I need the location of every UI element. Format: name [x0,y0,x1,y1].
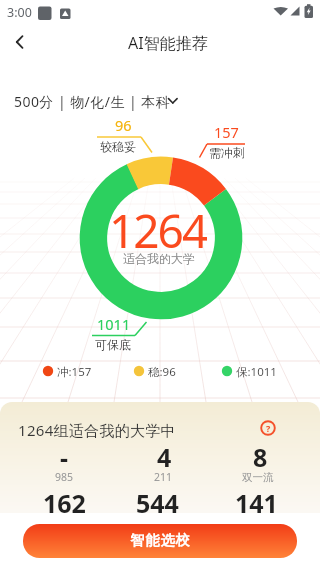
staticText: 500分 | 物/化/生 | 本科 [14,92,171,111]
staticText: - [60,440,69,474]
staticText: 3:00 [7,4,32,21]
button[interactable]: 智能选校 [23,524,297,558]
button[interactable] [219,360,295,382]
staticText: 544 [136,486,179,520]
staticText: 智能选校 [130,532,190,550]
button[interactable] [40,360,110,382]
staticText: 985 [55,470,74,484]
staticText: 162 [43,486,86,520]
button[interactable] [4,30,40,54]
staticText: 适合我的大学 [123,251,195,266]
staticText: 较稳妥 [100,139,136,154]
staticText: 1264 [109,199,207,249]
staticText: 需冲刺 [209,145,245,160]
button[interactable]: ? [256,416,280,440]
staticText: 96 [115,115,132,135]
staticText: 保:1011 [236,364,277,380]
staticText: 稳:96 [148,364,176,380]
staticText: 1011 [97,314,131,334]
staticText: 双一流 [242,471,274,484]
staticText: 8 [253,440,268,474]
staticText: 211 [154,470,173,484]
button[interactable] [131,360,197,382]
staticText: ? [266,422,271,434]
staticText: 141 [235,486,278,520]
staticText: 可保底 [95,337,131,352]
staticText: 4 [157,440,172,474]
staticText: AI智能推荐 [128,32,208,54]
staticText: 157 [214,122,239,142]
staticText: 1264组适合我的大学中 [18,420,176,440]
button[interactable] [8,88,188,114]
staticText: 冲:157 [57,364,92,380]
